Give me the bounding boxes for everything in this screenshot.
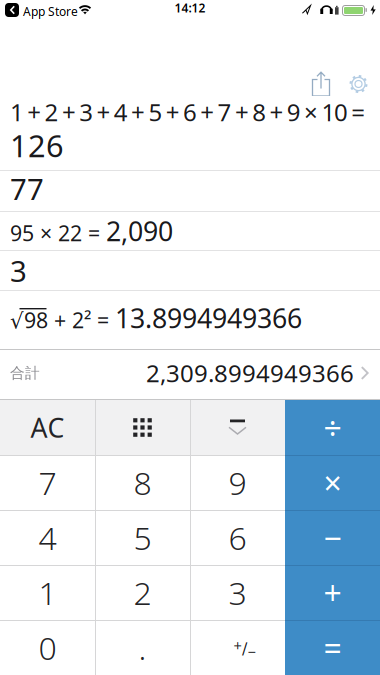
staticText: − — [323, 516, 341, 559]
staticText: 126 — [10, 125, 64, 166]
staticText: 1 — [38, 571, 56, 614]
staticText: AC — [30, 410, 64, 445]
staticText: ∕ — [242, 639, 247, 657]
button[interactable]: ÷ — [285, 400, 380, 455]
staticText: 4 — [38, 516, 56, 559]
staticText: App Store — [23, 3, 78, 19]
staticText: 0 — [38, 626, 56, 669]
staticText: 77 — [10, 169, 44, 208]
button[interactable] — [309, 71, 333, 96]
button[interactable]: 8 — [95, 455, 190, 510]
button[interactable]: . — [95, 620, 190, 675]
staticText: 5 — [133, 516, 151, 559]
staticText: × — [323, 461, 341, 504]
staticText: 合計 — [10, 364, 40, 382]
button[interactable]: + — [285, 565, 380, 620]
staticText: 13.8994949366 — [115, 300, 302, 336]
button[interactable]: 合計 — [0, 350, 380, 399]
staticText: 2,090 — [106, 213, 173, 249]
staticText: + — [323, 571, 341, 614]
button[interactable]: 0 — [0, 620, 95, 675]
staticText: 95 × 22 = — [10, 219, 106, 247]
button[interactable]: 2 — [95, 565, 190, 620]
staticText: + — [233, 636, 241, 655]
staticText: 2,309.8994949366 — [146, 357, 354, 389]
staticText: 14:12 — [174, 0, 205, 16]
button[interactable]: 3 — [190, 565, 285, 620]
button[interactable]: − — [285, 510, 380, 565]
staticText: ÷ — [323, 406, 341, 449]
staticText: 2 — [133, 571, 151, 614]
staticText: √98 + 2² = — [10, 306, 115, 334]
button[interactable]: + — [190, 620, 285, 675]
button[interactable]: 5 — [95, 510, 190, 565]
staticText: 7 — [38, 461, 56, 504]
button[interactable] — [190, 400, 285, 455]
staticText: = — [323, 626, 341, 669]
button[interactable] — [347, 72, 370, 95]
button[interactable]: = — [285, 620, 380, 675]
button[interactable]: 4 — [0, 510, 95, 565]
staticText: . — [138, 626, 146, 669]
staticText: 1 + 2 + 3 + 4 + 5 + 6 + 7 + 8 + 9 × 10 = — [10, 96, 365, 128]
button[interactable]: 6 — [190, 510, 285, 565]
button[interactable]: 1 — [0, 565, 95, 620]
staticText: 3 — [10, 251, 27, 290]
button[interactable]: 7 — [0, 455, 95, 510]
staticText: − — [247, 642, 255, 662]
staticText: 9 — [228, 461, 246, 504]
staticText: 6 — [228, 516, 246, 559]
button[interactable]: 9 — [190, 455, 285, 510]
staticText: 3 — [228, 571, 246, 614]
button[interactable]: × — [285, 455, 380, 510]
button[interactable]: AC — [0, 400, 95, 455]
button[interactable] — [95, 400, 190, 455]
staticText: 8 — [133, 461, 151, 504]
